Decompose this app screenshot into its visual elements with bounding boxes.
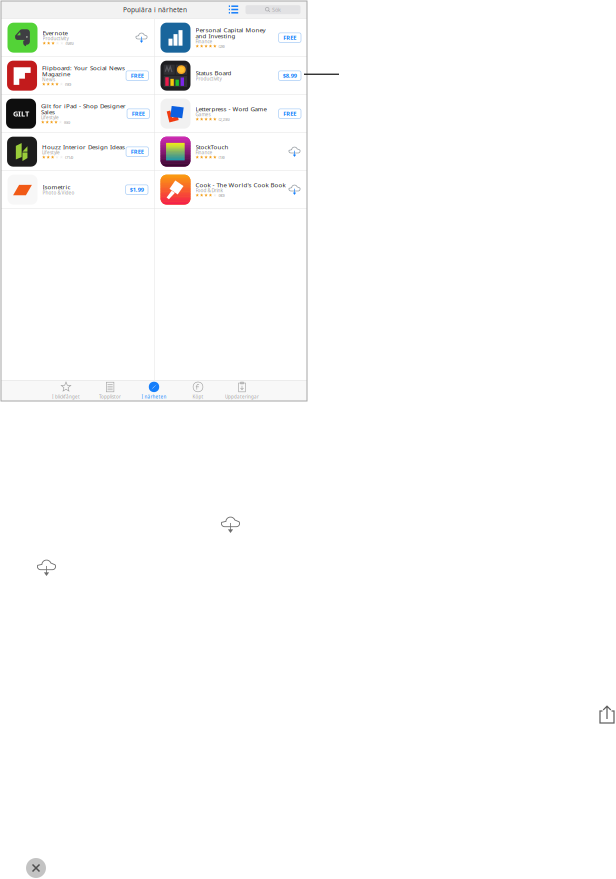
staticText: (80) [217, 192, 224, 198]
button[interactable]: List view [221, 1, 245, 18]
staticText: I närheten [141, 394, 166, 400]
staticText: $8.99 [283, 72, 297, 79]
staticText: Finance [195, 149, 212, 156]
staticText: FREE [283, 34, 296, 41]
button[interactable]: FREE [279, 109, 301, 118]
staticText: I blickfånget [52, 394, 80, 400]
staticText: Productivity [42, 35, 68, 42]
button[interactable]: Flipboard: Your Social News [1, 57, 154, 94]
button[interactable]: Isometric [1, 171, 154, 208]
staticText: Köpt [192, 394, 203, 400]
staticText: Uppdateringar [225, 394, 259, 400]
staticText: Populära i närheten [123, 5, 187, 14]
button[interactable]: Personal Capital Money [154, 19, 307, 56]
staticText: (714) [64, 154, 73, 160]
staticText: Lifestyle [41, 114, 59, 121]
staticText: Personal Capital Money [195, 26, 265, 34]
button[interactable]: Letterpress - Word Game [154, 95, 307, 132]
staticText: (2,236) [217, 116, 229, 122]
staticText: Food & Drink [195, 187, 222, 194]
button[interactable]: FREE [126, 71, 148, 80]
staticText: Finance [195, 38, 212, 45]
staticText: Sök [272, 6, 281, 13]
staticText: Flipboard: Your Social News [42, 64, 125, 72]
button[interactable]: FREE [279, 33, 301, 42]
button[interactable]: $1.99 [126, 185, 148, 194]
staticText: Isometric [42, 183, 70, 191]
button[interactable]: FREE [127, 109, 149, 118]
staticText: Magazine [42, 70, 70, 78]
staticText: FREE [283, 110, 296, 117]
button[interactable]: $8.99 [279, 71, 301, 80]
button[interactable]: Topplistor [88, 380, 132, 401]
staticText: (585) [64, 40, 73, 46]
staticText: (90) [64, 81, 71, 87]
button[interactable]: GILT [1, 95, 154, 132]
staticText: Photo & Video [42, 189, 74, 196]
button[interactable]: Share [599, 705, 615, 724]
button[interactable]: Houzz Interior Design Ideas [1, 133, 154, 170]
button[interactable]: Close [26, 858, 46, 878]
staticText: News [42, 76, 55, 83]
staticText: FREE [131, 72, 144, 79]
staticText: Status Board [195, 69, 231, 77]
staticText: FREE [131, 148, 144, 155]
staticText: and Investing [195, 32, 235, 40]
staticText: (28) [217, 43, 224, 49]
staticText: Topplistor [99, 394, 121, 400]
button[interactable]: I blickfånget [44, 380, 88, 401]
button[interactable]: Status Board [154, 57, 307, 94]
button[interactable]: Uppdateringar [220, 380, 264, 401]
button[interactable]: Cook - The World's Cook Book [154, 171, 307, 208]
staticText: Gilt for iPad - Shop Designer [41, 102, 126, 110]
staticText: Cook - The World's Cook Book [195, 181, 285, 189]
staticText: Houzz Interior Design Ideas [42, 143, 125, 151]
button[interactable]: FREE [126, 147, 148, 156]
button[interactable]: Search [245, 5, 300, 14]
staticText: (66) [63, 119, 70, 125]
staticText: Evernote [42, 29, 67, 37]
staticText: (18) [217, 154, 224, 160]
staticText: Productivity [195, 75, 221, 82]
staticText: StockTouch [195, 143, 228, 151]
staticText: Sales [41, 108, 55, 116]
button[interactable]: I närheten [132, 380, 176, 401]
staticText: Lifestyle [42, 149, 60, 156]
button[interactable]: Evernote [1, 19, 154, 56]
staticText: FREE [132, 110, 145, 117]
staticText: Letterpress - Word Game [195, 105, 266, 113]
staticText: Games [195, 111, 210, 118]
button[interactable]: Köpt [176, 380, 220, 401]
staticText: GILT [13, 109, 29, 119]
button[interactable]: StockTouch [154, 133, 307, 170]
staticText: $1.99 [130, 186, 144, 193]
